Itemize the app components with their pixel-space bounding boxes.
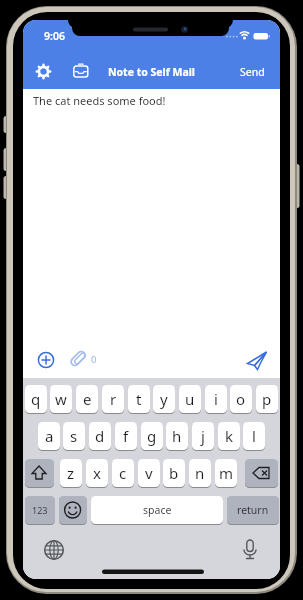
staticText: x [93, 463, 101, 483]
button[interactable]: space [91, 496, 223, 524]
staticText: u [185, 389, 195, 409]
button[interactable] [25, 459, 54, 487]
button[interactable]: t [128, 385, 150, 413]
staticText: 0 [91, 353, 97, 366]
staticText: 9:06 [44, 29, 65, 43]
staticText: j [201, 426, 205, 446]
staticText: c [119, 463, 127, 483]
staticText: m [219, 463, 234, 483]
button[interactable] [247, 350, 267, 370]
button[interactable]: z [60, 459, 82, 487]
staticText: y [160, 389, 168, 409]
button[interactable]: e [76, 385, 98, 413]
button[interactable]: p [256, 385, 278, 413]
staticText: q [31, 389, 41, 409]
staticText: i [214, 389, 218, 409]
button[interactable]: j [192, 422, 214, 450]
button[interactable] [68, 349, 88, 369]
button[interactable] [245, 459, 278, 487]
staticText: v [145, 463, 153, 483]
button[interactable]: v [138, 459, 160, 487]
button[interactable]: y [153, 385, 175, 413]
button[interactable] [71, 62, 91, 82]
staticText: b [169, 463, 179, 483]
staticText: e [83, 389, 92, 409]
button[interactable] [43, 539, 65, 561]
staticText: a [45, 426, 54, 446]
staticText: o [236, 389, 246, 409]
button[interactable]: k [218, 422, 240, 450]
button[interactable]: c [112, 459, 134, 487]
staticText: space [143, 503, 172, 517]
button[interactable]: b [163, 459, 185, 487]
button[interactable]: 123 [25, 496, 55, 524]
button[interactable]: m [215, 459, 237, 487]
button[interactable]: d [89, 422, 111, 450]
staticText: return [237, 503, 269, 517]
button[interactable]: Send [235, 64, 269, 80]
staticText: g [147, 426, 157, 446]
staticText: l [252, 426, 256, 446]
staticText: n [195, 463, 205, 483]
staticText: The cat needs some food! [33, 93, 166, 108]
staticText: k [225, 426, 234, 446]
button[interactable]: i [205, 385, 227, 413]
staticText: p [262, 389, 272, 409]
button[interactable]: s [63, 422, 85, 450]
button[interactable]: x [86, 459, 108, 487]
button[interactable] [239, 538, 261, 560]
button[interactable]: o [230, 385, 252, 413]
staticText: f [123, 426, 129, 446]
button[interactable]: return [227, 496, 279, 524]
staticText: s [70, 426, 78, 446]
button[interactable]: q [25, 385, 47, 413]
button[interactable]: w [50, 385, 72, 413]
button[interactable]: f [115, 422, 137, 450]
button[interactable]: h [166, 422, 188, 450]
button[interactable]: r [102, 385, 124, 413]
button[interactable]: n [189, 459, 211, 487]
staticText: z [67, 463, 75, 483]
button[interactable] [34, 62, 54, 82]
staticText: h [172, 426, 182, 446]
staticText: r [110, 389, 117, 409]
button[interactable] [59, 496, 87, 524]
staticText: d [95, 426, 105, 446]
button[interactable] [36, 349, 56, 369]
staticText: Note to Self Mail [108, 65, 195, 79]
button[interactable]: l [243, 422, 265, 450]
button[interactable]: u [179, 385, 201, 413]
button[interactable]: a [38, 422, 60, 450]
staticText: t [136, 389, 142, 409]
staticText: 123 [32, 504, 48, 516]
staticText: w [55, 389, 67, 409]
button[interactable]: g [141, 422, 163, 450]
staticText: Send [240, 65, 265, 79]
